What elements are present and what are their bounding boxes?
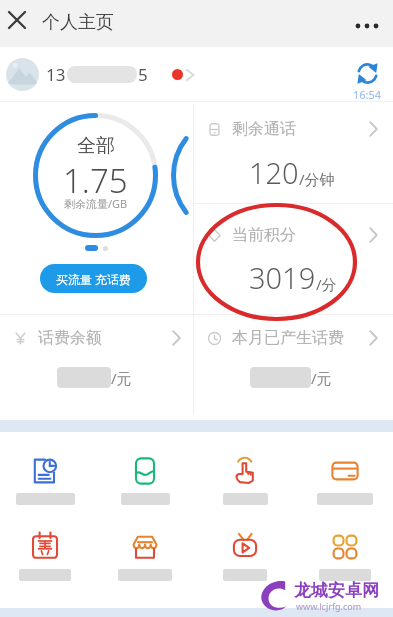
staticText: /元 [111,368,132,388]
button[interactable]: 本月已产生话费 [194,315,393,415]
button[interactable]: Close [3,6,31,34]
button[interactable]: 13 [46,62,148,86]
staticText: 本月已产生话费 [232,328,344,348]
staticText: 剩余通话 [232,119,296,139]
staticText: 3019 [249,258,316,297]
button[interactable]: Profile avatar [6,58,39,91]
button[interactable]: Data usage [110,448,180,506]
staticText: /分 [316,274,337,294]
button[interactable]: All services [310,524,380,582]
staticText: 13 [46,63,66,86]
button[interactable]: Bill details [10,448,80,506]
button[interactable]: Discounts [10,524,80,582]
button[interactable]: Payment card [310,448,380,506]
staticText: 120 [249,153,299,192]
staticText: 剩余流量/GB [64,196,128,211]
button[interactable]: 个人主页 [42,11,114,35]
staticText: /元 [311,368,332,388]
staticText: 买流量 充话费 [56,271,132,287]
staticText: 5 [138,63,148,86]
button[interactable]: 买流量 充话费 [40,264,147,293]
button[interactable]: 当前积分 [194,204,393,314]
button[interactable]: Store [110,524,180,582]
staticText: 龙城安卓网 [294,580,379,601]
button[interactable]: Refresh [348,60,386,102]
staticText: /分钟 [299,169,335,189]
staticText: www.lcjrfg.com [296,600,362,612]
staticText: 当前积分 [232,225,296,245]
button[interactable]: Quick recharge [210,448,280,506]
staticText: 16:54 [353,87,382,102]
button[interactable]: 话费余额 [0,315,193,415]
staticText: 个人主页 [42,11,114,34]
staticText: 全部 [77,134,115,158]
staticText: 1.75 [63,158,128,203]
button[interactable]: 剩余通话 [194,104,393,203]
button[interactable]: Video [210,524,280,582]
button[interactable]: Messages [172,64,196,85]
button[interactable]: More options [347,7,385,45]
staticText: 话费余额 [38,328,102,348]
